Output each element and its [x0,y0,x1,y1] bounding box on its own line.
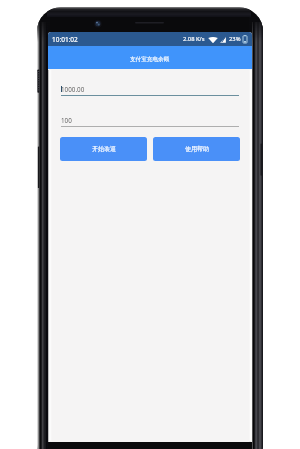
other: Mobile signal [220,36,226,43]
staticText: 2.08 K/s [183,35,205,43]
button[interactable]: 使用帮助 [153,137,240,161]
staticText: 100 [61,116,72,125]
other: Wi-Fi signal [208,36,218,43]
button[interactable]: 开始装逼 [60,137,147,161]
other: Battery level [243,35,247,43]
staticText: 支付宝充电余额 [130,56,170,63]
staticText: 开始装逼 [92,145,116,153]
staticText: 使用帮助 [185,145,209,153]
staticText: 10:01:02 [52,35,78,44]
staticText: 1000.00 [61,85,85,94]
staticText: 23% [229,35,241,43]
